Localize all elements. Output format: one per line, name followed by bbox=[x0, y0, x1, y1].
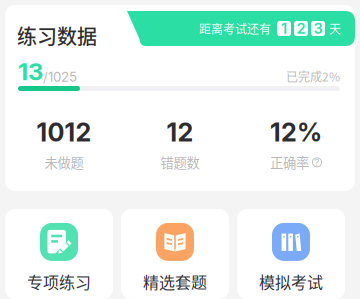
button[interactable]: 模拟考试 bbox=[237, 209, 345, 299]
staticText: 已完成2% bbox=[286, 68, 340, 85]
button[interactable]: 精选套题 bbox=[121, 209, 229, 299]
staticText: ? bbox=[314, 157, 319, 168]
staticText: 3 bbox=[313, 20, 322, 37]
staticText: 12% bbox=[270, 117, 322, 148]
button[interactable]: 专项练习 bbox=[5, 209, 113, 299]
staticText: 精选套题 bbox=[143, 270, 207, 293]
staticText: 模拟考试 bbox=[259, 270, 323, 293]
staticText: 错题数 bbox=[160, 153, 199, 172]
staticText: 天 bbox=[329, 20, 341, 37]
staticText: 距离考试还有 bbox=[199, 20, 271, 37]
staticText: 专项练习 bbox=[27, 270, 91, 293]
staticText: 正确率 bbox=[270, 153, 309, 172]
staticText: 13 bbox=[18, 57, 43, 86]
staticText: /1025 bbox=[43, 69, 77, 85]
staticText: 12 bbox=[166, 117, 193, 148]
staticText: 1 bbox=[281, 20, 287, 37]
staticText: 未做题 bbox=[44, 153, 83, 172]
staticText: 2 bbox=[296, 20, 305, 37]
staticText: 1012 bbox=[36, 117, 91, 148]
staticText: 练习数据 bbox=[17, 21, 97, 50]
